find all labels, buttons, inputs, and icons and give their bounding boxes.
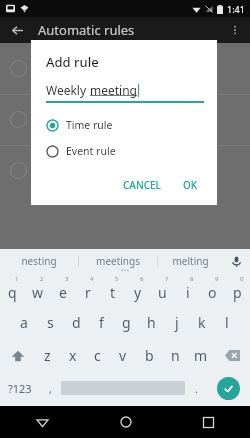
button[interactable]: 6 — [125, 273, 150, 306]
button[interactable]: 0 — [225, 273, 250, 306]
staticText: x — [69, 346, 77, 365]
staticText: 0 — [240, 275, 244, 283]
staticText: o — [208, 283, 217, 302]
button[interactable]: a — [11, 306, 37, 339]
button[interactable]: 9 — [200, 273, 225, 306]
button[interactable]: g — [114, 306, 139, 339]
staticText: meeting — [90, 82, 137, 98]
button[interactable]: Navigate up — [4, 17, 30, 43]
staticText: f — [99, 313, 104, 332]
button[interactable]: 5 — [100, 273, 125, 306]
staticText: Event rule — [66, 144, 116, 158]
button[interactable]: Recent apps — [167, 406, 250, 438]
staticText: d — [72, 313, 81, 332]
button[interactable]: Voice input — [222, 249, 250, 273]
staticText: y — [134, 283, 142, 302]
staticText: q — [8, 283, 17, 302]
staticText: g — [122, 313, 131, 332]
button[interactable]: l — [214, 306, 239, 339]
staticText: n — [171, 346, 180, 365]
button[interactable]: v — [110, 339, 136, 372]
staticText: 9 — [215, 275, 219, 283]
button[interactable]: 1 — [0, 273, 25, 306]
button[interactable]: x — [60, 339, 85, 372]
staticText: b — [145, 346, 154, 365]
button[interactable]: 4 — [75, 273, 100, 306]
staticText: nesting — [21, 254, 57, 268]
staticText: p — [233, 283, 242, 302]
button[interactable]: h — [139, 306, 164, 339]
staticText: 1:41 — [227, 3, 245, 15]
button[interactable]: Back — [0, 406, 84, 438]
staticText: v — [119, 346, 127, 365]
staticText: k — [198, 313, 206, 332]
button[interactable]: Done — [217, 377, 240, 400]
button[interactable]: Backspace — [214, 339, 250, 372]
button[interactable]: melting — [158, 249, 222, 273]
button[interactable]: j — [164, 306, 189, 339]
staticText: 3 — [65, 275, 69, 283]
button[interactable]: ?123 — [0, 372, 39, 404]
staticText: w — [32, 283, 44, 302]
button[interactable]: 8 — [175, 273, 200, 306]
button[interactable]: OK — [177, 173, 204, 197]
staticText: 6 — [140, 275, 144, 283]
button[interactable]: Shift — [0, 339, 35, 372]
button[interactable]: Home — [84, 406, 167, 438]
button[interactable]: . — [185, 372, 207, 404]
staticText: j — [175, 313, 179, 332]
button[interactable]: f — [89, 306, 114, 339]
staticText: u — [158, 283, 167, 302]
button[interactable]: nesting — [0, 249, 78, 273]
button[interactable]: m — [188, 339, 214, 372]
button[interactable]: 2 — [25, 273, 50, 306]
staticText: c — [94, 346, 101, 365]
button[interactable]: CANCEL — [117, 173, 167, 197]
staticText: t — [110, 283, 116, 302]
staticText: meetings — [96, 254, 140, 268]
staticText: l — [225, 313, 229, 332]
staticText: . — [195, 381, 198, 396]
button[interactable]: k — [189, 306, 214, 339]
staticText: 1 — [15, 275, 19, 283]
staticText: h — [147, 313, 156, 332]
staticText: i — [186, 283, 190, 302]
staticText: m — [194, 346, 208, 365]
staticText: melting — [172, 254, 209, 268]
button[interactable]: Event rule — [46, 142, 116, 160]
staticText: CANCEL — [123, 178, 161, 192]
staticText: , — [49, 381, 52, 396]
staticText: 2 — [40, 275, 44, 283]
button[interactable]: 3 — [50, 273, 75, 306]
staticText: 5 — [115, 275, 119, 283]
button[interactable]: 7 — [150, 273, 175, 306]
button[interactable]: z — [35, 339, 60, 372]
staticText: 7 — [165, 275, 169, 283]
button[interactable]: b — [136, 339, 162, 372]
button[interactable]: d — [63, 306, 89, 339]
button[interactable]: n — [162, 339, 188, 372]
staticText: OK — [183, 178, 198, 192]
staticText: Time rule — [66, 118, 113, 132]
button[interactable]: Time rule — [46, 116, 113, 134]
staticText: z — [44, 346, 51, 365]
staticText: s — [47, 313, 54, 332]
staticText: Off — [34, 119, 49, 133]
button[interactable]: More options — [223, 18, 247, 42]
staticText: Weekly — [46, 82, 90, 98]
staticText: Add rule — [46, 53, 99, 71]
button[interactable]: , — [39, 372, 61, 404]
staticText: e — [59, 283, 67, 302]
staticText: Automatic rules — [38, 21, 135, 39]
staticText: 8 — [190, 275, 194, 283]
staticText: r — [85, 283, 91, 302]
button[interactable]: c — [85, 339, 110, 372]
staticText: ?123 — [8, 381, 32, 396]
staticText: a — [20, 313, 28, 332]
button[interactable]: s — [37, 306, 63, 339]
staticText: 4 — [90, 275, 94, 283]
button[interactable]: meetings — [79, 249, 157, 273]
